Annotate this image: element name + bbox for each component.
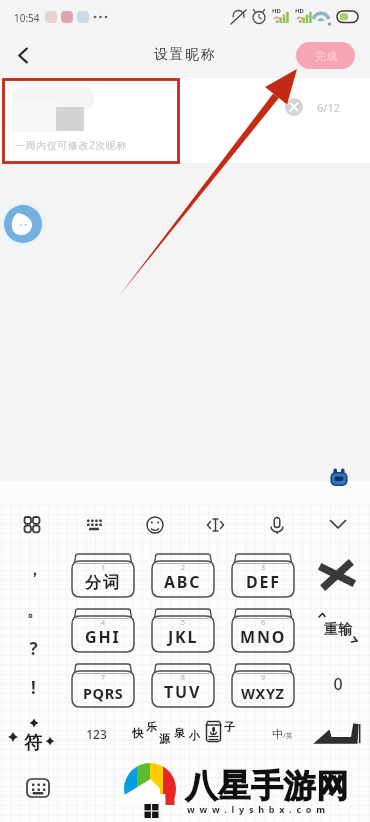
button[interactable]: 9 [232, 664, 294, 707]
staticText: 0 [333, 673, 343, 695]
staticText: 7 [101, 673, 106, 683]
staticText: 设置昵称 [154, 46, 217, 64]
staticText: 3 [261, 563, 266, 573]
staticText: GHI [85, 626, 121, 648]
staticText: 符 [24, 732, 42, 755]
staticText: ， [27, 561, 42, 580]
staticText: DEF [246, 571, 281, 593]
button[interactable]: 7 [72, 664, 134, 707]
button[interactable]: 2 [152, 554, 214, 597]
button[interactable]: 0 [314, 667, 362, 701]
staticText: 乐 [146, 720, 157, 734]
button[interactable]: 。 [10, 594, 58, 628]
staticText: HD [272, 7, 281, 15]
button[interactable]: 重输 [312, 610, 364, 648]
staticText: w w w . l y s h b x . c o m [187, 803, 327, 815]
staticText: MNO [240, 626, 287, 648]
staticText: 10:54 [14, 11, 40, 25]
staticText: /英 [283, 731, 293, 741]
button[interactable]: Voice input [259, 507, 295, 543]
staticText: 源 [159, 732, 170, 746]
staticText: 中 [272, 727, 283, 741]
staticText: 5 [181, 618, 186, 628]
button[interactable]: 5 [152, 609, 214, 652]
staticText: JKL [168, 626, 199, 648]
button[interactable]: ? [9, 631, 57, 665]
staticText: 1 [101, 563, 106, 573]
button[interactable]: Clear text [285, 98, 303, 116]
staticText: PQRS [83, 683, 124, 703]
staticText: 分词 [85, 573, 121, 593]
staticText: ? [29, 637, 38, 660]
staticText: 8 [181, 673, 186, 683]
staticText: 快 [132, 726, 143, 740]
staticText: 4 [101, 618, 106, 628]
button[interactable]: Switch keyboard [26, 776, 50, 800]
staticText: 泉 [174, 726, 185, 740]
button[interactable]: Emoji [137, 507, 173, 543]
button[interactable]: Enter [310, 718, 364, 752]
staticText: 八星手游网 [185, 766, 349, 806]
button[interactable]: 符 [8, 715, 56, 763]
staticText: TUV [164, 681, 202, 703]
button[interactable]: Delete [314, 552, 360, 598]
button[interactable]: 123 [72, 717, 120, 751]
staticText: 完成 [315, 49, 337, 63]
staticText: 9 [261, 673, 266, 683]
button[interactable]: Space [126, 712, 258, 754]
button[interactable]: Panels [14, 507, 50, 543]
staticText: 6/12 [317, 100, 340, 115]
button[interactable]: 1 [72, 554, 134, 597]
button[interactable]: Keyboard layout [76, 507, 112, 543]
staticText: 小 [189, 729, 200, 743]
button[interactable]: Assistant [1, 202, 45, 246]
staticText: ABC [164, 571, 202, 593]
staticText: ! [31, 676, 36, 699]
button[interactable]: ， [10, 553, 58, 587]
staticText: HD [295, 7, 304, 15]
staticText: WXYZ [241, 683, 285, 703]
button[interactable]: Back [6, 39, 39, 72]
button[interactable]: 中 [262, 718, 302, 750]
button[interactable]: 8 [152, 664, 214, 707]
button[interactable]: 4 [72, 609, 134, 652]
button[interactable]: 完成 [296, 42, 355, 69]
staticText: 重输 [324, 621, 352, 639]
staticText: 123 [86, 726, 107, 742]
button[interactable]: Edit text [198, 507, 234, 543]
button[interactable]: Input method badge [328, 467, 350, 489]
button[interactable]: 6 [232, 609, 294, 652]
button[interactable]: Hide keyboard [320, 506, 356, 542]
button[interactable]: 3 [232, 554, 294, 597]
staticText: 。 [27, 602, 42, 621]
staticText: 子 [224, 720, 235, 734]
staticText: 2 [181, 563, 186, 573]
staticText: 一周内仅可修改2次昵称 [15, 138, 128, 152]
staticText: 6 [261, 618, 266, 628]
button[interactable]: ! [9, 670, 57, 704]
